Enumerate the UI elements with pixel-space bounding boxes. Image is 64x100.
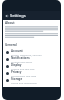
staticText: Notifications — [11, 56, 30, 60]
staticText: About — [5, 21, 15, 25]
staticText: Sounds and alerts — [11, 60, 33, 63]
button[interactable]: Notifications — [5, 56, 58, 63]
staticText: Account — [11, 49, 23, 53]
button[interactable]: Privacy — [5, 70, 58, 77]
button[interactable]: Account — [5, 49, 58, 56]
staticText: Profile, password, security — [11, 53, 42, 56]
button[interactable]: Display — [5, 63, 58, 70]
staticText: Theme and text size — [11, 67, 35, 70]
staticText: Cache and downloads — [11, 81, 37, 84]
staticText: General — [5, 43, 17, 47]
button[interactable]: Back — [5, 14, 9, 18]
staticText: Display — [11, 63, 22, 67]
staticText: Settings — [10, 13, 26, 18]
staticText: Privacy — [11, 70, 22, 74]
staticText: Storage — [11, 77, 23, 81]
staticText: Permissions and data — [11, 74, 37, 77]
button[interactable]: Storage — [5, 77, 58, 84]
